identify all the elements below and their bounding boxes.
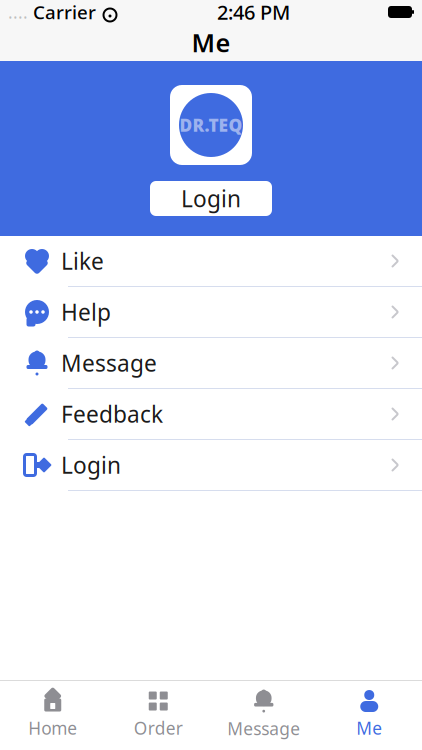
button[interactable]: Login — [0, 440, 422, 491]
staticText: Carrier — [28, 0, 96, 24]
button[interactable]: Message — [0, 338, 422, 389]
staticText: Order — [134, 716, 183, 739]
button[interactable]: Help — [0, 287, 422, 338]
staticText: Login — [61, 450, 121, 480]
staticText: Me — [356, 716, 382, 739]
button[interactable]: Message — [211, 681, 316, 750]
button[interactable]: Like — [0, 236, 422, 287]
staticText: Help — [61, 297, 111, 327]
staticText: DR.TEQ — [179, 113, 242, 136]
staticText: Message — [227, 717, 300, 740]
staticText: Feedback — [61, 399, 163, 429]
staticText: Me — [191, 26, 230, 59]
staticText: Like — [61, 246, 104, 276]
staticText: Home — [28, 716, 77, 739]
staticText: 2:46 PM — [217, 0, 290, 25]
button[interactable]: Login — [150, 181, 272, 216]
staticText: Login — [181, 183, 241, 213]
staticText: Message — [61, 348, 157, 378]
button[interactable]: Home — [0, 681, 105, 749]
button[interactable]: Order — [105, 681, 211, 749]
button[interactable]: Feedback — [0, 389, 422, 440]
button[interactable]: Me — [316, 681, 422, 749]
staticText: .... — [8, 0, 28, 23]
